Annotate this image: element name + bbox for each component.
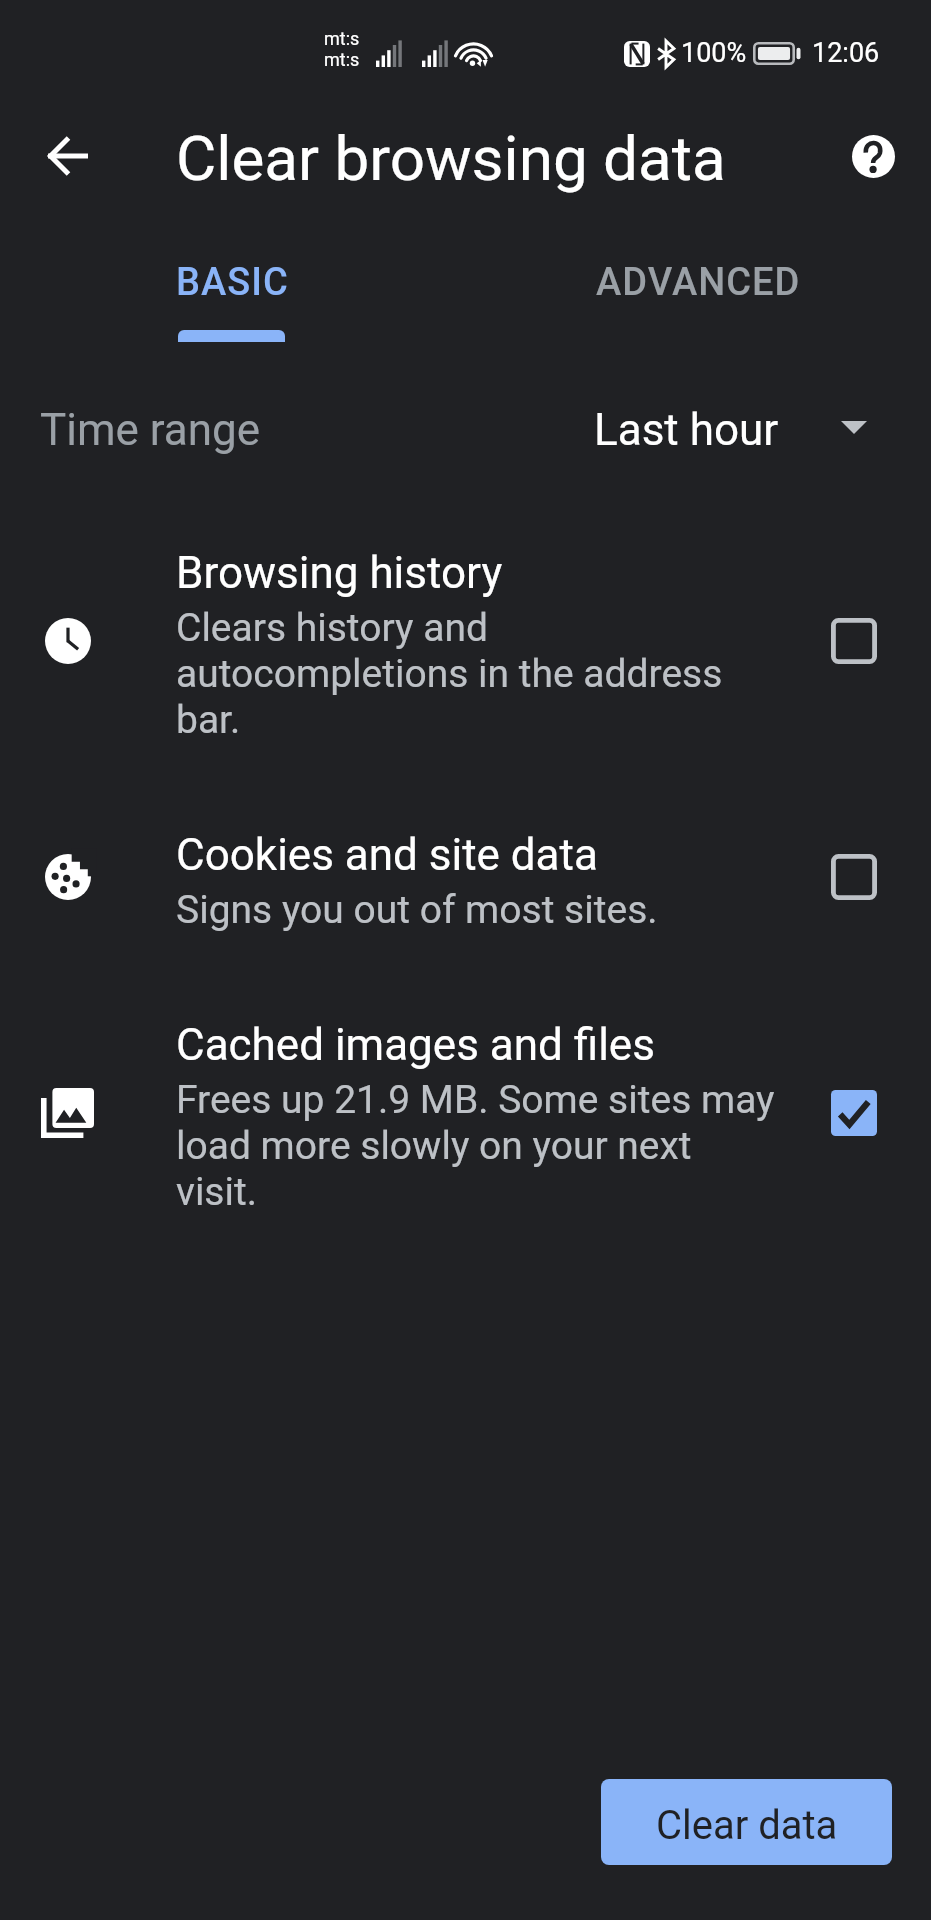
button[interactable]: Time range [0, 378, 931, 482]
staticText: 100% [681, 37, 747, 69]
button[interactable]: Help [825, 108, 921, 204]
button[interactable]: Browsing history [0, 517, 931, 759]
staticText: Browsing history [176, 547, 503, 599]
button[interactable]: BASIC [0, 228, 465, 342]
staticText: Time range [40, 404, 261, 456]
staticText: Signs you out of most sites. [176, 887, 658, 933]
staticText: Frees up 21.9 MB. Some sites may load mo… [176, 1077, 778, 1215]
button[interactable]: Navigate up [20, 108, 116, 204]
button[interactable]: Clear data [601, 1779, 892, 1865]
staticText: ADVANCED [596, 260, 801, 305]
staticText: 12:06 [812, 37, 880, 69]
staticText: Last hour [594, 404, 779, 456]
staticText: BASIC [176, 260, 289, 305]
staticText: Clear data [656, 1802, 838, 1849]
button[interactable]: Cookies and site data [0, 799, 931, 951]
staticText: Cookies and site data [176, 829, 598, 881]
staticText: Cached images and files [176, 1019, 655, 1071]
staticText: Clear browsing data [176, 122, 726, 195]
staticText: Clears history and autocompletions in th… [176, 605, 778, 743]
staticText: mt:s [324, 49, 360, 70]
button[interactable]: ADVANCED [465, 228, 931, 342]
button[interactable]: Cached images and files [0, 989, 931, 1231]
staticText: mt:s [324, 28, 360, 49]
